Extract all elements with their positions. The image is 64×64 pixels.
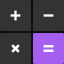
button[interactable]: Multiply bbox=[0, 33, 31, 64]
button[interactable]: Equals bbox=[33, 33, 64, 64]
button[interactable]: Subtract bbox=[33, 0, 64, 31]
button[interactable]: Add bbox=[0, 0, 31, 31]
